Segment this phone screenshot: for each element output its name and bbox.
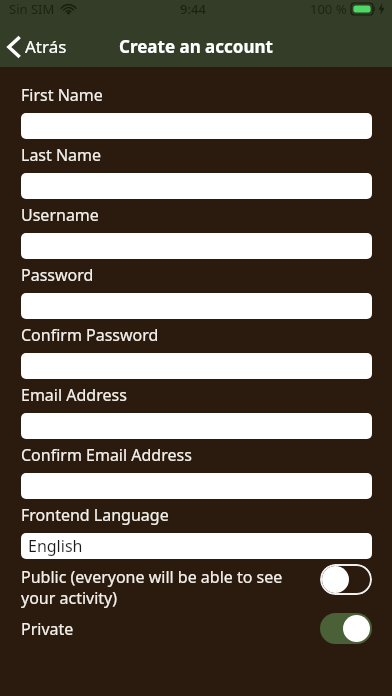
button[interactable] [21, 233, 372, 259]
button[interactable] [21, 113, 372, 139]
button[interactable]: Public (everyone will be able to see you… [21, 564, 372, 609]
button[interactable]: Private [21, 613, 372, 644]
staticText: Confirm Email Address [21, 444, 192, 466]
staticText: Last Name [21, 144, 102, 166]
staticText: Confirm Password [21, 324, 159, 346]
staticText: English [28, 535, 83, 557]
button[interactable] [21, 473, 372, 499]
button[interactable]: Atrás [0, 31, 77, 62]
button[interactable]: English [21, 533, 372, 559]
staticText: 100 % [310, 0, 347, 18]
staticText: Password [21, 264, 94, 286]
button[interactable] [21, 353, 372, 379]
staticText: Username [21, 204, 99, 226]
button[interactable] [21, 173, 372, 199]
staticText: Sin SIM [9, 0, 55, 18]
staticText: Email Address [21, 384, 127, 406]
button[interactable] [21, 293, 372, 319]
button[interactable]: Public toggle [320, 564, 372, 595]
button[interactable]: Private toggle [320, 613, 372, 644]
staticText: 9:44 [180, 0, 206, 18]
staticText: Public (everyone will be able to see you… [21, 566, 314, 609]
staticText: Create an account [119, 35, 273, 58]
staticText: First Name [21, 84, 103, 106]
button[interactable] [21, 413, 372, 439]
staticText: Frontend Language [21, 504, 169, 526]
staticText: Atrás [25, 35, 67, 58]
staticText: Private [21, 618, 320, 640]
